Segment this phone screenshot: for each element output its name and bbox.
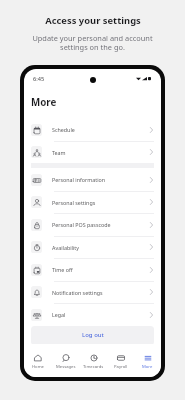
staticText: Messages [56,364,76,370]
button[interactable]: Schedule [31,118,154,141]
staticText: Personal settings [52,199,96,206]
staticText: Personal POS passcode [52,221,111,228]
staticText: Schedule [52,126,75,133]
button[interactable]: Log out [31,326,154,345]
staticText: Access your settings [45,14,141,27]
staticText: Team [52,149,66,156]
staticText: Availability [52,244,79,251]
staticText: Timecards [83,364,104,370]
button[interactable]: Notification settings [31,281,154,303]
staticText: 6:45 [33,75,45,83]
staticText: Update your personal and account setting… [32,33,153,52]
staticText: Notification settings [52,289,103,296]
button[interactable]: Home [24,344,52,370]
button[interactable]: Personal POS passcode [31,213,154,236]
button[interactable]: Availability [31,236,154,258]
staticText: Payroll [114,364,128,370]
staticText: Log out [82,331,104,339]
button[interactable]: Payroll [107,344,134,370]
staticText: More [142,364,153,370]
button[interactable]: Time off [31,258,154,281]
button[interactable]: Timecards [80,344,107,370]
staticText: Legal [52,311,66,318]
button[interactable]: Messages [52,344,80,370]
staticText: Home [32,364,44,370]
staticText: Time off [52,266,73,273]
button[interactable]: Team [31,141,154,163]
staticText: Personal information [52,176,106,183]
button[interactable]: More [134,344,161,370]
button[interactable]: Legal [31,303,154,326]
button[interactable]: Personal information [31,168,154,191]
button[interactable]: Personal settings [31,191,154,213]
staticText: More [31,96,57,109]
